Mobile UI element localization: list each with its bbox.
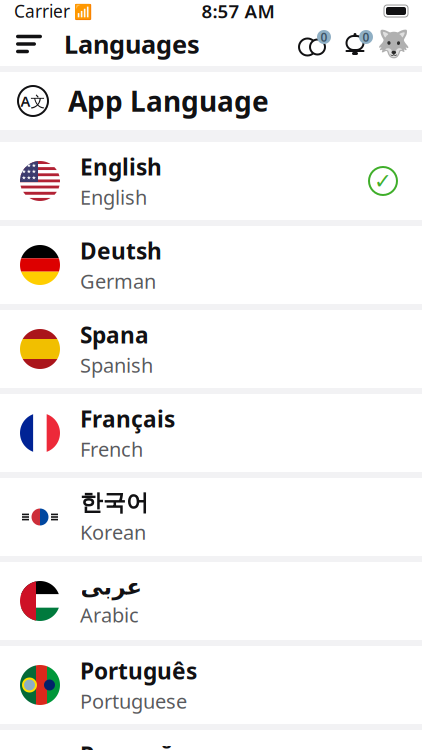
staticText: German [80,268,156,294]
staticText: Deutsh [80,236,162,266]
staticText: Spanish [80,352,153,378]
staticText: Português [80,656,197,686]
staticText: 0 [320,29,327,45]
button[interactable]: Deutsh [0,226,422,304]
button[interactable]: عربى [0,562,422,640]
button[interactable]: ★★★ ★★★ ★★★ [0,142,422,220]
staticText: 🐺 [376,29,409,59]
staticText: Portuguese [80,688,187,714]
staticText: French [80,436,143,462]
staticText: Languages [64,27,200,61]
button[interactable]: Spana [0,310,422,388]
button[interactable]: Notifications [336,29,378,59]
staticText: 한국어 [80,489,149,517]
staticText: 0 [362,29,369,45]
staticText: ✓ [374,169,392,193]
staticText: English [80,152,162,182]
button[interactable]: Français [0,394,422,472]
button[interactable]: 한국어 [0,478,422,556]
staticText: Arabic [80,602,139,628]
button[interactable]: Menu [0,22,58,66]
staticText: عربى [80,574,141,600]
staticText: English [80,184,147,210]
button[interactable]: Profile [378,22,422,66]
staticText: ★★★ ★★★ ★★★ [21,162,36,181]
button[interactable]: Português [0,646,422,724]
staticText: Korean [80,519,146,545]
staticText: Carrier [14,0,70,22]
staticText: App Language [68,82,269,120]
staticText: 8:57 AM [201,0,274,23]
staticText: A文 [20,91,45,111]
staticText: Spana [80,320,149,350]
staticText: 📶 [70,1,92,21]
button[interactable]: Messages [294,29,336,59]
staticText: Français [80,404,175,434]
button[interactable]: Русский [0,730,422,750]
staticText: Русский [80,740,174,750]
